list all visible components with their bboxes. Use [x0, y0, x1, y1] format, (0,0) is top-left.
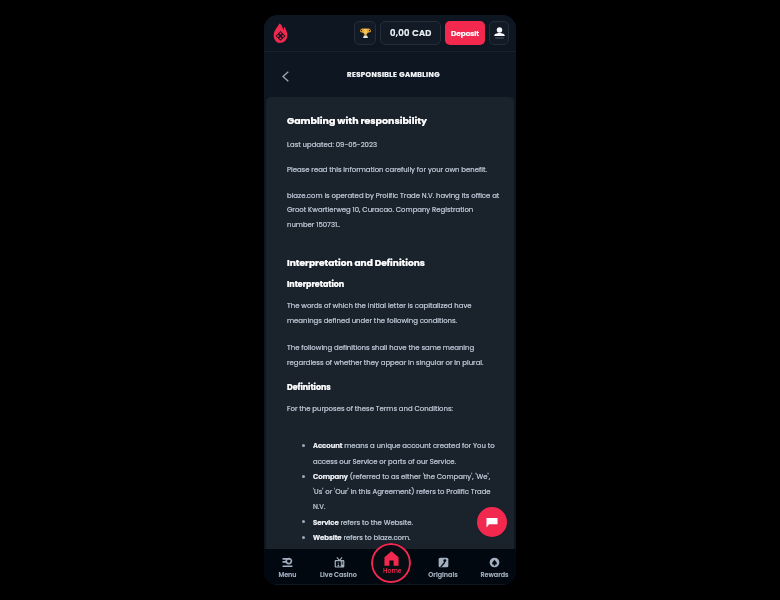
staticText: Please read this information carefully f… — [287, 165, 487, 175]
staticText: For the purposes of these Terms and Cond… — [287, 404, 453, 414]
button[interactable]: Menu — [265, 549, 309, 584]
button[interactable]: 0,00 CAD — [380, 21, 441, 45]
staticText: Website refers to blaze.com. — [313, 533, 411, 543]
staticText: Definitions — [287, 382, 331, 393]
button[interactable]: Chat support — [477, 507, 507, 537]
button[interactable]: Tournaments — [354, 21, 376, 45]
staticText: Company (referred to as either 'the Comp… — [313, 472, 491, 482]
staticText: number 150731.. — [287, 220, 341, 230]
staticText: Originals — [428, 570, 458, 579]
button[interactable]: Home — [371, 543, 411, 583]
staticText: Home — [383, 566, 402, 575]
button[interactable]: Blaze home — [266, 19, 292, 45]
staticText: blaze.com is operated by Prolific Trade … — [287, 191, 500, 201]
staticText: Service refers to the Website. — [313, 518, 413, 528]
staticText: Interpretation and Definitions — [287, 256, 425, 269]
staticText: RESPONSIBLE GAMBLING — [347, 70, 440, 80]
staticText: Live Casino — [320, 570, 357, 579]
staticText: Deposit — [451, 28, 480, 38]
staticText: meanings defined under the following con… — [287, 316, 458, 326]
button[interactable]: Back — [272, 63, 298, 89]
button[interactable]: Live Casino — [317, 549, 361, 584]
staticText: The following definitions shall have the… — [287, 343, 475, 353]
staticText: 0,00 CAD — [390, 27, 432, 39]
staticText: Menu — [278, 570, 297, 579]
button[interactable]: Rewards — [472, 549, 516, 584]
staticText: Gambling with responsibility — [287, 114, 427, 127]
staticText: Interpretation — [287, 279, 345, 290]
staticText: Last updated: 09-05-2023 — [287, 140, 377, 150]
button[interactable]: Profile — [489, 21, 509, 45]
staticText: The words of which the initial letter is… — [287, 301, 472, 311]
staticText: Rewards — [480, 570, 509, 579]
staticText: 'Us' or 'Our' in this Agreement) refers … — [313, 487, 491, 497]
staticText: N.V. — [313, 502, 326, 512]
staticText: regardless of whether they appear in sin… — [287, 358, 484, 368]
button[interactable]: Deposit — [445, 21, 485, 45]
staticText: Groot Kwartierweg 10, Curacao. Company R… — [287, 205, 474, 215]
button[interactable]: Originals — [421, 549, 465, 584]
staticText: Account means a unique account created f… — [313, 441, 495, 451]
staticText: access our Service or parts of our Servi… — [313, 457, 457, 467]
